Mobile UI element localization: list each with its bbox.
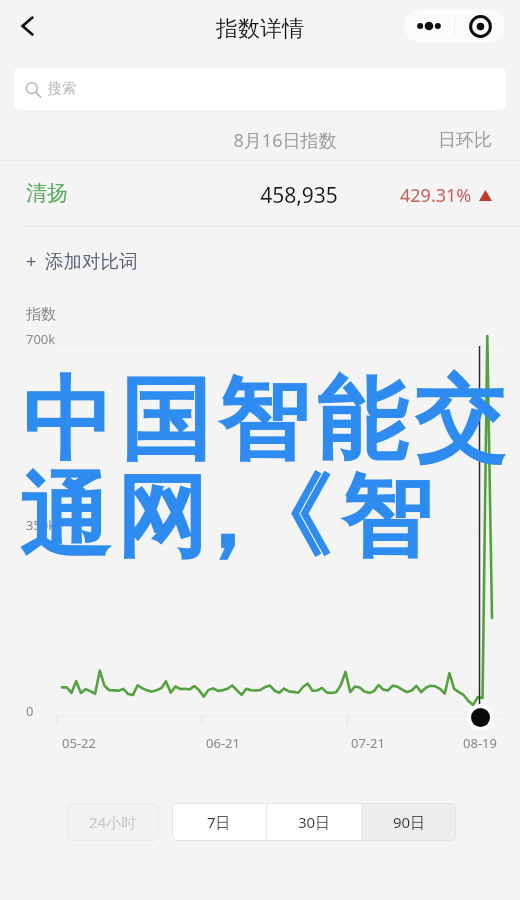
staticText: 《	[240, 460, 331, 575]
staticText: 指数详情	[0, 15, 520, 43]
button[interactable]: 7日	[172, 803, 266, 841]
staticText: 05-22	[39, 734, 119, 752]
staticText: 24小时	[89, 812, 137, 832]
button[interactable]: +	[26, 240, 138, 282]
staticText: 通	[19, 460, 110, 575]
staticText: 搜索	[48, 80, 76, 98]
staticText: 0	[26, 702, 34, 720]
staticText: 458,935	[224, 181, 374, 210]
staticText: 06-21	[183, 734, 263, 752]
button[interactable]: Close	[455, 9, 505, 43]
staticText: 添加对比词	[45, 250, 138, 273]
button[interactable]: More options	[404, 9, 454, 43]
button[interactable]: 30日	[267, 803, 361, 841]
staticText: 90日	[393, 812, 426, 832]
staticText: 7日	[207, 812, 231, 832]
staticText: 08-19	[440, 734, 520, 752]
staticText: 网	[116, 460, 207, 575]
staticText: 智	[341, 460, 432, 575]
staticText: 交	[414, 363, 505, 478]
staticText: 能	[316, 363, 407, 478]
staticText: 350k	[26, 516, 56, 534]
staticText: 中	[22, 363, 113, 478]
staticText: 429.31%	[400, 183, 472, 208]
button[interactable]: Selected point 08-19	[467, 704, 493, 730]
staticText: 700k	[26, 330, 56, 348]
button[interactable]: 清扬	[0, 161, 520, 226]
button[interactable]: 90日	[362, 803, 456, 841]
staticText: 30日	[298, 812, 331, 832]
staticText: 清扬	[26, 180, 68, 206]
button[interactable]: 搜索	[14, 68, 506, 110]
staticText: 智	[218, 363, 309, 478]
staticText: +	[26, 249, 37, 274]
button[interactable]: Back	[8, 6, 48, 46]
staticText: 8月16日指数	[210, 128, 360, 153]
staticText: 指数	[26, 305, 56, 324]
staticText: 日环比	[382, 129, 492, 152]
staticText: ，	[180, 460, 271, 575]
staticText: 07-21	[328, 734, 408, 752]
staticText: 国	[120, 363, 211, 478]
button[interactable]: 24小时	[67, 803, 159, 841]
